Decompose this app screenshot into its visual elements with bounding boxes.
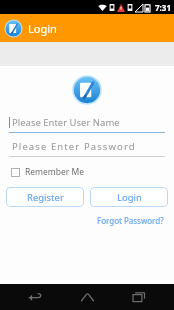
staticText: Login bbox=[28, 21, 57, 36]
button[interactable]: Home bbox=[70, 284, 104, 310]
button[interactable]: Remember Me bbox=[9, 164, 87, 180]
button[interactable]: Register bbox=[6, 187, 84, 207]
button[interactable]: Please Enter Password bbox=[9, 140, 165, 157]
button[interactable]: Recent apps bbox=[122, 284, 156, 310]
button[interactable]: Login bbox=[90, 187, 168, 207]
button[interactable]: Please Enter User Name bbox=[9, 116, 165, 133]
button[interactable]: Forgot Password? bbox=[95, 213, 166, 228]
staticText: Login bbox=[117, 191, 142, 204]
staticText: Please Enter Password bbox=[12, 140, 136, 153]
staticText: Register bbox=[27, 191, 64, 204]
staticText: 7:31 bbox=[155, 2, 171, 13]
staticText: Remember Me bbox=[25, 166, 85, 178]
button[interactable]: Back bbox=[18, 284, 52, 310]
staticText: Forgot Password? bbox=[97, 215, 164, 226]
staticText: Please Enter User Name bbox=[12, 116, 120, 129]
